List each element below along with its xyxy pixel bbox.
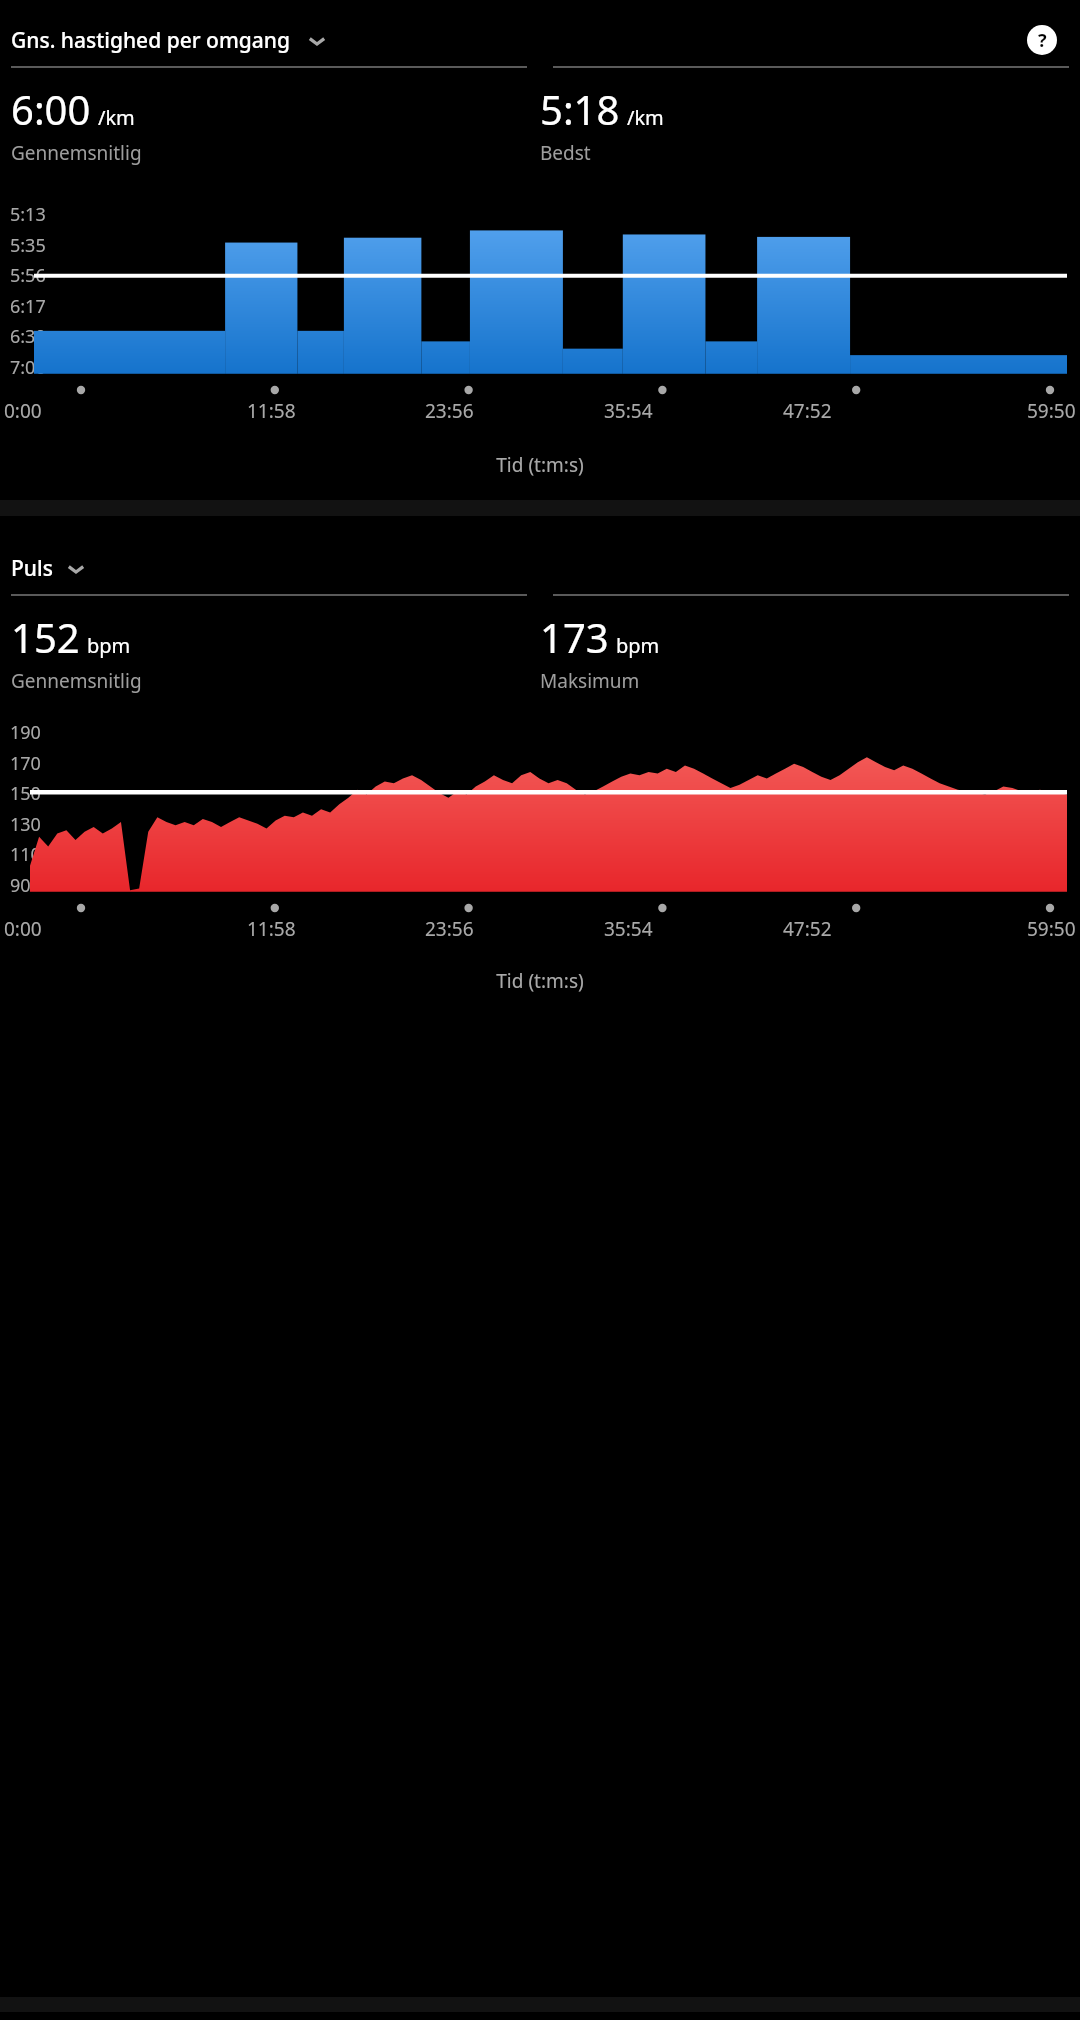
staticText: 7:00 xyxy=(10,355,46,380)
staticText: 11:58 xyxy=(247,916,296,942)
staticText: 130 xyxy=(10,812,41,837)
staticText: Gns. hastighed per omgang xyxy=(11,26,290,55)
staticText: /km xyxy=(627,104,664,131)
staticText: 5:18 xyxy=(540,82,620,136)
staticText: 5:35 xyxy=(10,233,46,258)
button[interactable]: Help xyxy=(1025,23,1059,57)
staticText: bpm xyxy=(616,632,660,659)
staticText: 90 xyxy=(10,873,31,898)
button[interactable]: Puls xyxy=(0,550,94,587)
staticText: bpm xyxy=(87,632,131,659)
staticText: Gennemsnitlig xyxy=(11,668,142,694)
staticText: 150 xyxy=(10,781,41,806)
staticText: 190 xyxy=(10,720,41,745)
staticText: /km xyxy=(98,104,135,131)
staticText: 35:54 xyxy=(604,916,653,942)
button[interactable]: Gns. hastighed per omgang xyxy=(0,22,335,59)
staticText: 23:56 xyxy=(425,916,474,942)
button[interactable]: 173 xyxy=(540,610,1069,694)
staticText: 23:56 xyxy=(425,398,474,424)
staticText: 6:17 xyxy=(10,294,46,319)
staticText: 11:58 xyxy=(247,398,296,424)
staticText: 35:54 xyxy=(604,398,653,424)
staticText: 5:56 xyxy=(10,263,46,288)
staticText: 5:13 xyxy=(10,202,46,227)
staticText: 47:52 xyxy=(783,398,832,424)
staticText: 6:00 xyxy=(11,82,91,136)
staticText: 0:00 xyxy=(4,398,42,424)
staticText: 59:50 xyxy=(1027,398,1076,424)
staticText: Maksimum xyxy=(540,668,640,694)
staticText: 152 xyxy=(11,610,80,664)
staticText: Gennemsnitlig xyxy=(11,140,142,166)
staticText: 47:52 xyxy=(783,916,832,942)
staticText: 170 xyxy=(10,751,41,776)
staticText: Bedst xyxy=(540,140,591,166)
staticText: Tid (t:m:s) xyxy=(0,452,1080,478)
staticText: 173 xyxy=(540,610,609,664)
staticText: 59:50 xyxy=(1027,916,1076,942)
button[interactable]: 152 xyxy=(11,610,540,694)
staticText: ? xyxy=(1038,28,1047,53)
button[interactable]: 6:00 xyxy=(11,82,540,166)
staticText: Puls xyxy=(11,554,53,583)
staticText: 0:00 xyxy=(4,916,42,942)
button[interactable]: 5:18 xyxy=(540,82,1069,166)
staticText: Tid (t:m:s) xyxy=(0,968,1080,994)
staticText: 110 xyxy=(10,842,41,867)
staticText: 6:39 xyxy=(10,324,46,349)
